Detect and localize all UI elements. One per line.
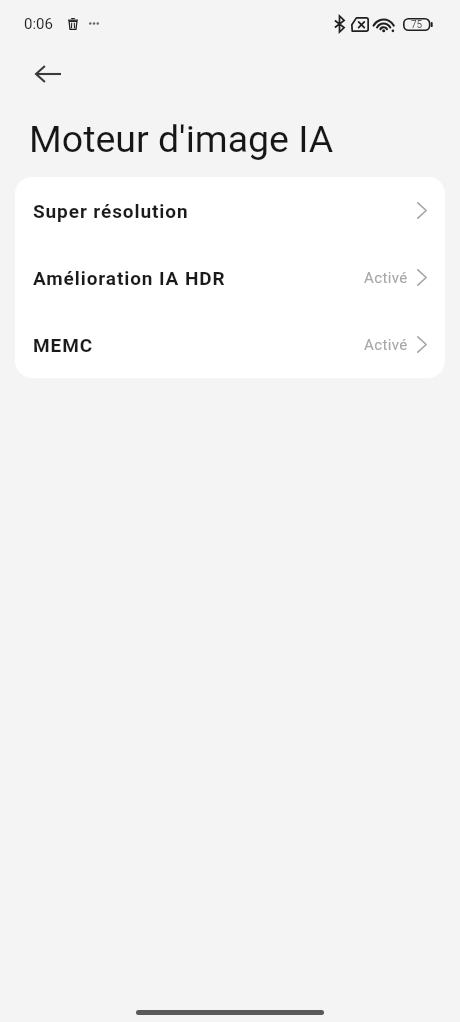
button[interactable]: Super résolution [15,177,445,244]
button[interactable]: Back [28,54,68,94]
button[interactable]: MEMC [15,311,445,378]
button[interactable]: Amélioration IA HDR [15,244,445,311]
staticText: Super résolution [33,200,189,222]
staticText: MEMC [33,334,94,356]
staticText: 0:06 [24,15,53,33]
staticText: Activé [364,269,408,287]
staticText: Moteur d'image IA [29,117,334,161]
staticText: Amélioration IA HDR [33,267,226,289]
staticText: Activé [364,336,408,354]
staticText: 75 [411,19,423,31]
